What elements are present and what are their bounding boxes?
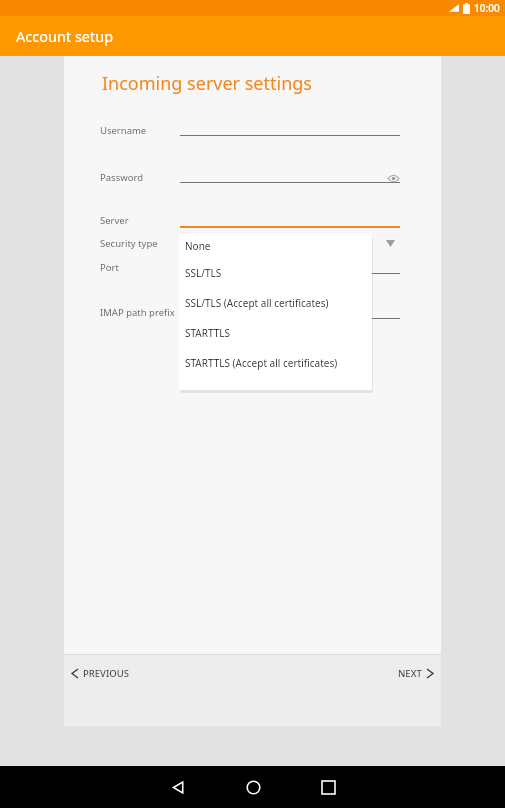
button[interactable]: None (179, 234, 372, 258)
staticText: Incoming server settings (102, 71, 312, 96)
button[interactable]: Security type dropdown (380, 234, 400, 252)
staticText: PREVIOUS (83, 667, 129, 680)
staticText: Password (100, 171, 143, 184)
staticText: IMAP path prefix (100, 306, 175, 319)
button[interactable]: SSL/TLS (Accept all certificates) (179, 288, 372, 318)
button[interactable] (180, 318, 400, 319)
button[interactable]: STARTTLS (179, 318, 372, 348)
staticText: NEXT (398, 667, 422, 680)
staticText: Account setup (16, 26, 114, 46)
staticText: STARTTLS (Accept all certificates) (185, 356, 338, 370)
staticText: Security type (100, 237, 158, 250)
button[interactable]: SSL/TLS (179, 258, 372, 288)
button[interactable]: Back (161, 770, 195, 804)
button[interactable]: NEXT (390, 661, 441, 686)
staticText: SSL/TLS (Accept all certificates) (185, 296, 329, 310)
staticText: 10:00 (474, 1, 500, 15)
button[interactable]: Recent apps (311, 770, 345, 804)
button[interactable]: Home (236, 770, 270, 804)
button[interactable] (180, 273, 400, 274)
button[interactable]: STARTTLS (Accept all certificates) (179, 348, 372, 378)
button[interactable]: PREVIOUS (64, 661, 137, 686)
button[interactable]: Show password (386, 171, 400, 185)
staticText: Server (100, 214, 129, 227)
staticText: Username (100, 124, 147, 137)
staticText: STARTTLS (185, 326, 231, 340)
staticText: None (185, 239, 211, 253)
staticText: Port (100, 261, 119, 274)
staticText: SSL/TLS (185, 266, 222, 280)
